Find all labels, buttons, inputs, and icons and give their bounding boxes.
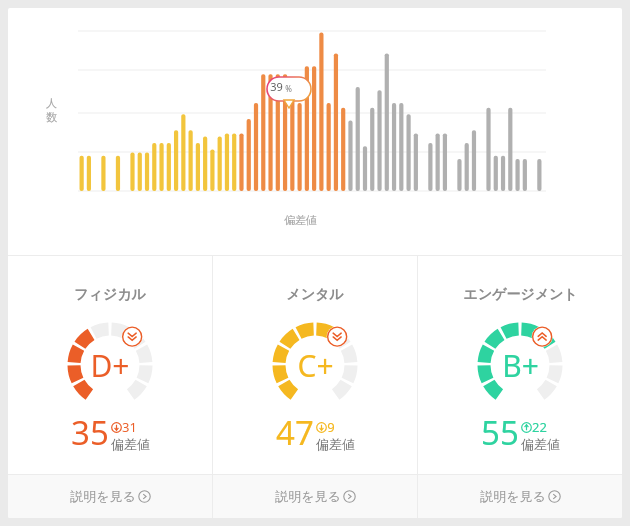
- staticText: 人: [46, 96, 57, 110]
- staticText: フィジカル: [74, 286, 146, 304]
- staticText: 説明を見る: [70, 488, 136, 504]
- other: 詳細を見る: [138, 490, 151, 503]
- staticText: B+: [502, 345, 539, 386]
- button[interactable]: フィジカル: [8, 256, 212, 518]
- staticText: 9: [327, 418, 335, 436]
- staticText: 偏差値: [111, 436, 150, 452]
- staticText: 55: [481, 410, 519, 455]
- staticText: 説明を見る: [275, 488, 341, 504]
- staticText: 35: [71, 410, 109, 455]
- button[interactable]: メンタル: [213, 256, 417, 518]
- button[interactable]: 説明を見る: [8, 474, 212, 518]
- staticText: メンタル: [286, 286, 344, 304]
- staticText: 数: [46, 110, 57, 124]
- staticText: 31: [122, 418, 137, 436]
- other: 詳細を見る: [343, 490, 356, 503]
- button[interactable]: 説明を見る: [213, 474, 417, 518]
- staticText: %: [285, 83, 292, 94]
- staticText: 説明を見る: [480, 488, 546, 504]
- staticText: 偏差値: [521, 436, 560, 452]
- staticText: 22: [532, 418, 547, 436]
- staticText: 47: [276, 410, 314, 455]
- other: 詳細を見る: [548, 490, 561, 503]
- staticText: D+: [90, 345, 130, 386]
- staticText: 39: [270, 79, 283, 94]
- button[interactable]: エンゲージメント: [418, 256, 622, 518]
- button[interactable]: 説明を見る: [418, 474, 622, 518]
- staticText: 偏差値: [284, 213, 317, 227]
- staticText: C+: [297, 345, 334, 386]
- staticText: 偏差値: [316, 436, 355, 452]
- staticText: エンゲージメント: [463, 286, 578, 304]
